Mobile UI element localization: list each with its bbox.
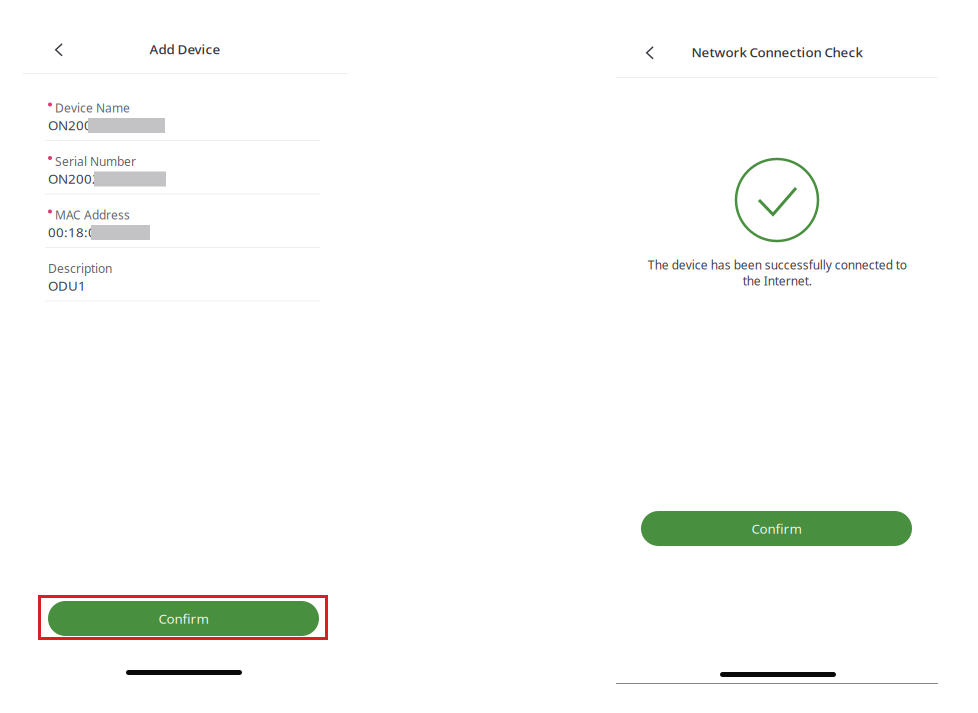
staticText: ON2002: [48, 170, 100, 187]
staticText: Network Connection Check: [691, 43, 862, 61]
staticText: Confirm: [158, 610, 208, 627]
staticText: Serial Number: [55, 153, 136, 169]
staticText: ODU1: [48, 277, 86, 294]
button[interactable]: Confirm: [641, 511, 912, 546]
staticText: Confirm: [751, 520, 801, 537]
staticText: ON2001: [48, 116, 100, 134]
staticText: 00:18:0: [48, 223, 96, 241]
staticText: Description: [48, 260, 112, 276]
button[interactable]: Back: [44, 35, 74, 65]
button[interactable]: Confirm: [48, 601, 319, 636]
staticText: Device Name: [55, 100, 130, 116]
staticText: MAC Address: [55, 207, 130, 223]
staticText: Add Device: [149, 40, 220, 58]
button[interactable]: Serial Number: [45, 153, 320, 206]
button[interactable]: MAC Address: [45, 207, 320, 260]
button[interactable]: Back: [635, 38, 665, 68]
staticText: The device has been successfully connect…: [647, 257, 906, 289]
button[interactable]: Description: [45, 260, 320, 313]
button[interactable]: Device Name: [45, 100, 320, 153]
